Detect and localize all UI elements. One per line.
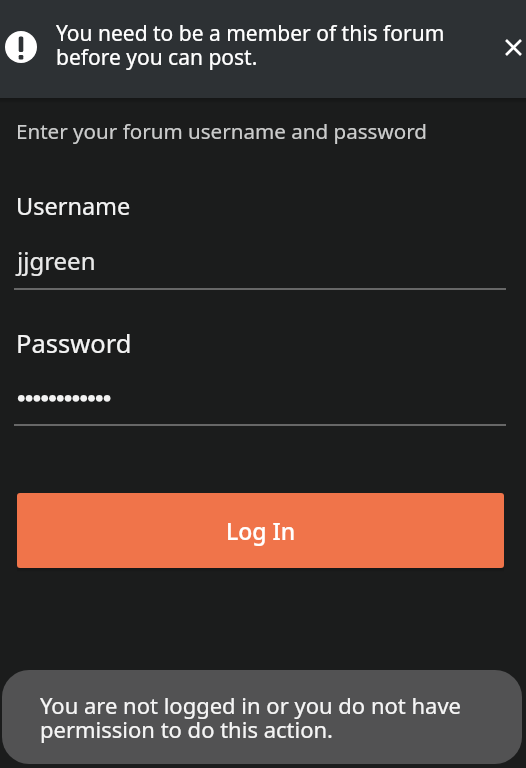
button[interactable] <box>14 238 506 292</box>
staticText: Enter your forum username and password <box>16 117 427 145</box>
button[interactable] <box>14 374 506 428</box>
staticText: You need to be a member of this forum be… <box>56 19 445 72</box>
staticText: You are not logged in or you do not have… <box>40 690 461 745</box>
staticText: jjgreen <box>17 244 96 277</box>
staticText: Username <box>16 190 131 222</box>
staticText: Log In <box>226 515 296 546</box>
button[interactable]: Log In <box>17 493 504 568</box>
button[interactable] <box>495 29 526 65</box>
staticText: Password <box>16 326 132 361</box>
